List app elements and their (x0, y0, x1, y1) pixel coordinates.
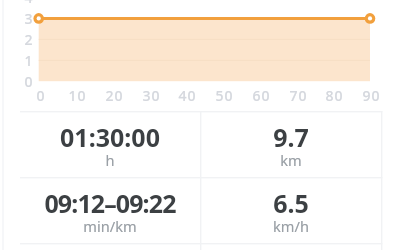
staticText: 80 (325, 86, 344, 105)
staticText: 30 (142, 86, 161, 105)
staticText: 0 (36, 86, 46, 105)
staticText: 3 (24, 9, 34, 28)
staticText: 4 (24, 0, 34, 7)
staticText: 50 (215, 86, 234, 105)
button[interactable]: 09:12–09:22 (20, 177, 200, 243)
staticText: 2 (24, 30, 34, 49)
staticText: 20 (105, 86, 124, 105)
staticText: min/km (83, 216, 137, 236)
staticText: 0 (24, 72, 34, 91)
staticText: 90 (362, 86, 381, 105)
staticText: km (280, 150, 302, 170)
staticText: 1 (24, 51, 34, 70)
staticText: 10 (68, 86, 87, 105)
staticText: km/h (273, 216, 309, 236)
staticText: h (105, 150, 115, 170)
staticText: 09:12–09:22 (44, 186, 176, 220)
staticText: 01:30:00 (60, 120, 160, 154)
button[interactable]: 6.5 (200, 177, 381, 243)
staticText: 40 (178, 86, 197, 105)
button[interactable]: 01:30:00 (20, 111, 200, 177)
button[interactable]: 9.7 (200, 111, 381, 177)
staticText: 9.7 (273, 120, 309, 154)
staticText: 70 (289, 86, 308, 105)
staticText: 6.5 (273, 186, 309, 220)
staticText: 60 (252, 86, 271, 105)
